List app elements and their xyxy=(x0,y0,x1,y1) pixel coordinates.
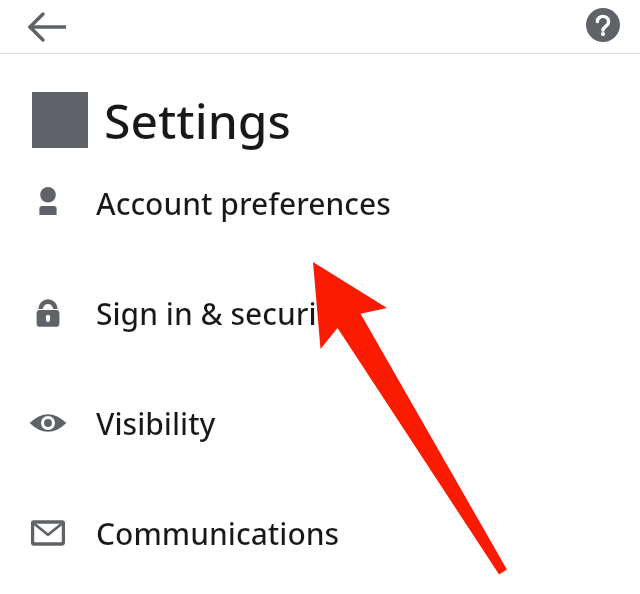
staticText: Sign in & security xyxy=(96,293,344,334)
button[interactable]: Help xyxy=(578,0,628,50)
button[interactable]: Account preferences xyxy=(0,148,640,258)
staticText: Visibility xyxy=(96,403,216,444)
button[interactable]: Sign in & security xyxy=(0,258,640,368)
staticText: Settings xyxy=(104,88,291,153)
button[interactable]: Visibility xyxy=(0,368,640,478)
staticText: Account preferences xyxy=(96,183,391,224)
staticText: Communications xyxy=(96,513,340,554)
button[interactable]: Communications xyxy=(0,478,640,588)
button[interactable]: Back xyxy=(14,3,62,51)
